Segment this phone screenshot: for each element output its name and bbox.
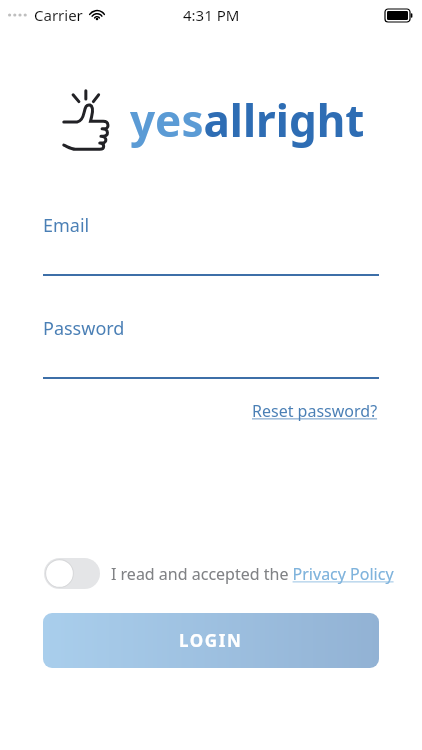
button[interactable]: Accept privacy policy toggle bbox=[44, 558, 100, 589]
button[interactable]: I read and accepted the Privacy Policy bbox=[111, 563, 394, 585]
staticText: Password bbox=[43, 316, 125, 341]
button[interactable]: Password bbox=[0, 316, 422, 379]
staticText: LOGIN bbox=[179, 629, 243, 652]
button[interactable]: Email bbox=[0, 213, 422, 276]
staticText: I read and accepted the Privacy Policy bbox=[111, 563, 394, 585]
other: yesallright logo bbox=[58, 88, 116, 156]
button[interactable]: Reset password? bbox=[250, 398, 380, 424]
staticText: Carrier bbox=[34, 5, 83, 25]
staticText: yesallright bbox=[130, 90, 365, 150]
staticText: Email bbox=[43, 213, 90, 238]
staticText: 4:31 PM bbox=[183, 5, 240, 25]
button[interactable]: LOGIN bbox=[43, 613, 379, 668]
staticText: Reset password? bbox=[252, 400, 378, 422]
